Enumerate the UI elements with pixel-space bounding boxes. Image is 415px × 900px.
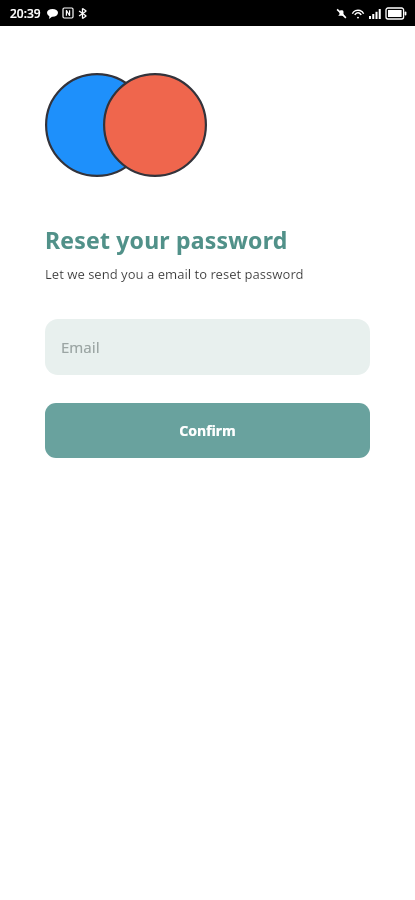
staticText: 20:39 <box>10 5 41 21</box>
button[interactable]: Confirm <box>45 403 370 458</box>
staticText: Confirm <box>179 421 236 440</box>
staticText: Email <box>61 337 100 357</box>
staticText: Reset your password <box>45 224 288 255</box>
button[interactable]: Email <box>45 319 370 375</box>
staticText: Let we send you a email to reset passwor… <box>45 265 304 283</box>
